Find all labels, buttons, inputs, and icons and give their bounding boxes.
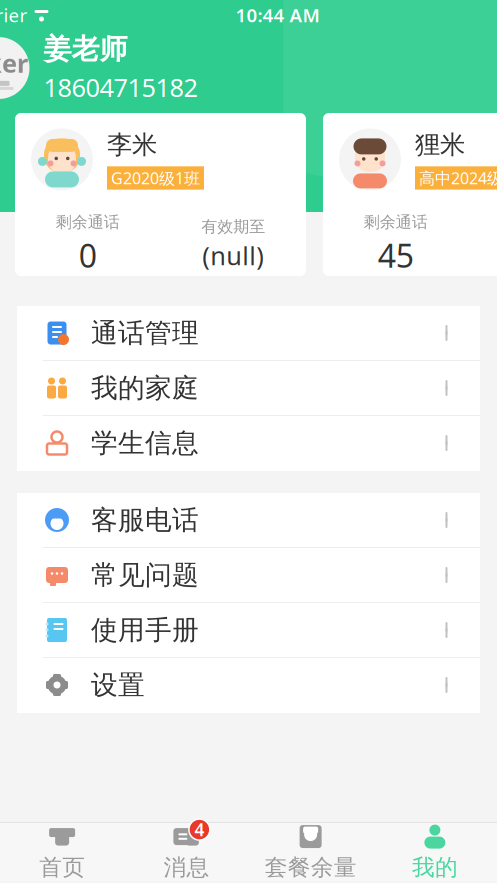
button[interactable]: 我的家庭 (17, 361, 480, 416)
staticText: 18604715182 (43, 70, 197, 104)
staticText: 10:44 AM (235, 3, 319, 27)
staticText: G2020级1班 (111, 167, 200, 189)
staticText: 有效期至 (201, 217, 265, 237)
button[interactable]: 4 (124, 823, 248, 881)
staticText: 客服电话 (91, 504, 199, 536)
staticText: 高中2024级1班 (419, 167, 497, 189)
button[interactable]: 学生信息 (17, 416, 480, 471)
staticText: 消息 (163, 854, 209, 881)
staticText: fiker (0, 46, 28, 80)
staticText: 我的家庭 (91, 372, 199, 404)
button[interactable]: 我的 (373, 823, 497, 881)
staticText: 狸米 (415, 129, 465, 160)
staticText: 剩余通话 (364, 212, 428, 232)
button[interactable]: 李米 (15, 113, 306, 276)
staticText: 李米 (107, 129, 157, 160)
staticText: 剩余通话 (56, 212, 120, 232)
staticText: 通话管理 (91, 317, 199, 349)
staticText: Carrier (0, 3, 27, 27)
staticText: 常见问题 (91, 559, 199, 591)
button[interactable]: 狸米 (323, 113, 497, 276)
staticText: 使用手册 (91, 614, 199, 646)
button[interactable]: 通话管理 (17, 306, 480, 361)
staticText: 0 (79, 234, 97, 277)
staticText: 45 (378, 234, 414, 277)
button[interactable]: 首页 (0, 823, 124, 881)
staticText: (null) (202, 238, 264, 272)
staticText: 姜老师 (43, 32, 127, 66)
button[interactable]: 使用手册 (17, 603, 480, 658)
staticText: 首页 (39, 854, 85, 881)
staticText: 学生信息 (91, 427, 199, 459)
button[interactable]: 常见问题 (17, 548, 480, 603)
button[interactable]: 设置 (17, 658, 480, 713)
staticText: 设置 (91, 669, 145, 701)
staticText: 4 (194, 818, 204, 841)
button[interactable]: 客服电话 (17, 493, 480, 548)
staticText: 套餐余量 (265, 854, 357, 881)
staticText: 我的 (412, 854, 458, 881)
button[interactable]: 套餐余量 (248, 823, 373, 881)
